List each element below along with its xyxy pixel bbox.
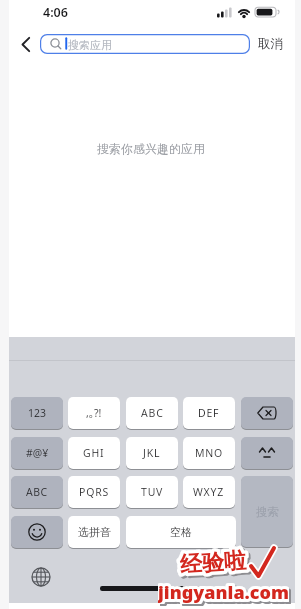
button[interactable]: 取消: [258, 36, 283, 52]
button[interactable]: ,｡?!: [68, 397, 120, 429]
button[interactable]: ABC: [126, 397, 178, 429]
staticText: MNO: [195, 446, 224, 460]
staticText: jingyanla.com: [158, 580, 289, 604]
staticText: 搜索应用: [68, 38, 112, 52]
button[interactable]: [21, 37, 31, 52]
staticText: GHI: [83, 446, 105, 460]
button[interactable]: 123: [11, 397, 63, 429]
button[interactable]: WXYZ: [183, 476, 235, 508]
staticText: 搜索你感兴趣的应用: [97, 141, 205, 156]
staticText: WXYZ: [193, 485, 225, 499]
staticText: JKL: [143, 446, 161, 460]
button[interactable]: TUV: [126, 476, 178, 508]
staticText: 经验啦: [181, 549, 249, 581]
staticText: 123: [28, 406, 47, 420]
button[interactable]: MNO: [183, 437, 235, 469]
button[interactable]: GHI: [68, 437, 120, 469]
staticText: 搜索: [256, 505, 279, 519]
button[interactable]: [241, 437, 293, 469]
button[interactable]: [11, 516, 63, 548]
staticText: 选拼音: [78, 525, 111, 539]
staticText: TUV: [141, 485, 164, 499]
staticText: ABC: [141, 406, 164, 420]
button[interactable]: [31, 567, 51, 587]
staticText: 经验啦: [179, 547, 247, 579]
staticText: jingyanla.com: [160, 582, 291, 606]
button[interactable]: #@¥: [11, 437, 63, 469]
button[interactable]: [241, 397, 293, 429]
button[interactable]: 选拼音: [68, 516, 120, 548]
staticText: #@¥: [26, 446, 49, 460]
staticText: DEF: [198, 406, 220, 420]
staticText: jingyanla.com: [158, 580, 289, 604]
staticText: 经验啦: [179, 547, 247, 579]
button[interactable]: 空格: [126, 516, 236, 548]
button[interactable]: ABC: [11, 476, 63, 508]
button[interactable]: DEF: [183, 397, 235, 429]
staticText: 4:06: [43, 4, 68, 21]
button[interactable]: 搜索应用: [40, 34, 250, 54]
staticText: ,｡?!: [86, 406, 102, 420]
button[interactable]: PQRS: [68, 476, 120, 508]
staticText: 空格: [170, 525, 192, 539]
button[interactable]: 搜索: [241, 476, 293, 547]
staticText: ABC: [26, 485, 48, 499]
button[interactable]: JKL: [126, 437, 178, 469]
staticText: PQRS: [79, 485, 110, 499]
